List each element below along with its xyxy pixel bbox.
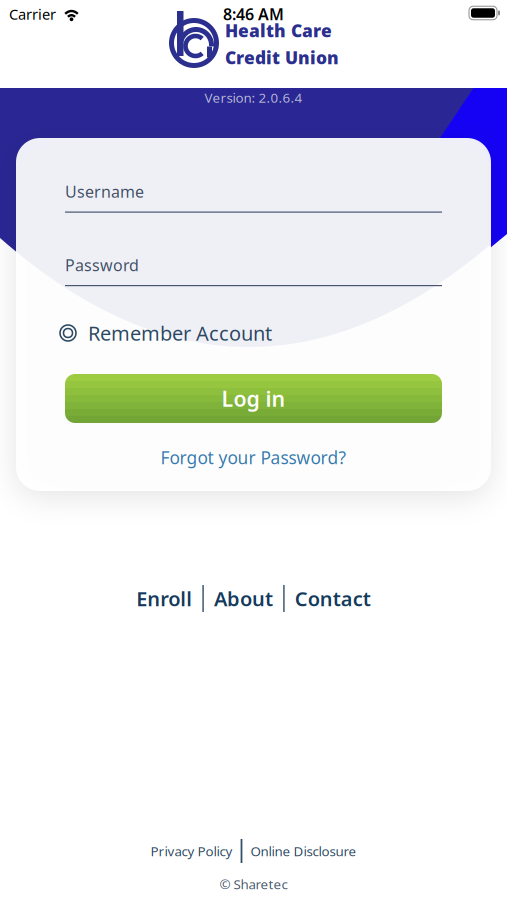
button[interactable]: Log in	[65, 374, 442, 423]
button[interactable]: Contact	[295, 585, 371, 612]
button[interactable]: Privacy Policy	[151, 842, 233, 860]
staticText: Version: 2.0.6.4	[204, 89, 302, 106]
button[interactable]: Remember Account	[60, 318, 437, 348]
staticText: 8:46 AM	[223, 3, 284, 25]
staticText: Privacy Policy	[151, 842, 233, 860]
staticText: Remember Account	[88, 320, 272, 346]
staticText: Forgot your Password?	[160, 446, 346, 469]
button[interactable]: Forgot your Password?	[160, 446, 346, 469]
button[interactable]: Enroll	[136, 585, 192, 612]
staticText: Password	[65, 254, 139, 276]
button[interactable]: Online Disclosure	[250, 842, 356, 860]
staticText: Enroll	[136, 585, 192, 612]
staticText: About	[214, 585, 273, 612]
staticText: © Sharetec	[219, 875, 287, 893]
staticText: Health Care	[225, 19, 332, 42]
staticText: Credit Union	[225, 46, 339, 69]
button[interactable]: About	[214, 585, 273, 612]
staticText: Online Disclosure	[250, 842, 356, 860]
staticText: Carrier	[9, 4, 56, 24]
staticText: Contact	[295, 585, 371, 612]
staticText: Log in	[221, 384, 285, 413]
button[interactable]: Username	[65, 183, 442, 223]
staticText: Username	[65, 181, 144, 202]
button[interactable]: Password	[65, 256, 442, 296]
